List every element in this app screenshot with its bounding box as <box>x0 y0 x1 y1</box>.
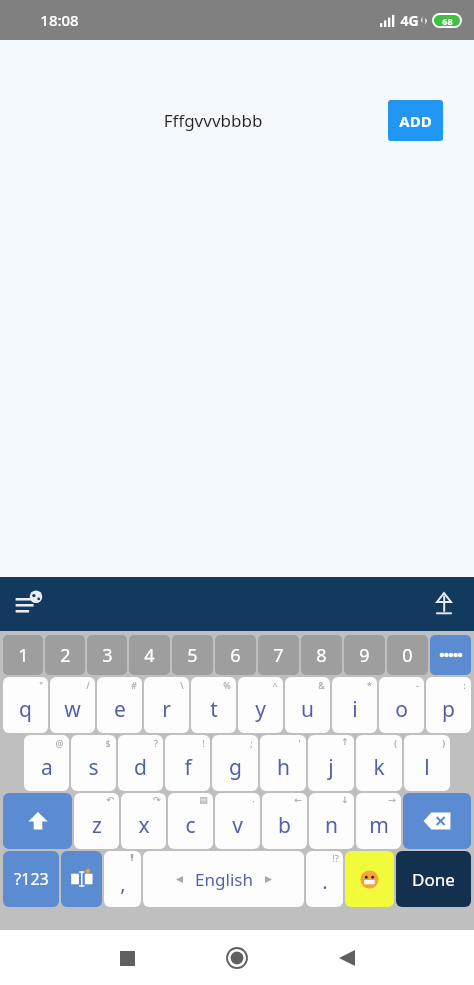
staticText: j <box>328 753 334 782</box>
button[interactable]: 9 <box>344 635 385 675</box>
button[interactable]: Recents <box>72 935 182 981</box>
button[interactable]: ; <box>212 735 258 791</box>
staticText: English <box>195 868 253 891</box>
staticText: ' <box>298 737 301 749</box>
button[interactable]: More <box>430 635 471 675</box>
staticText: 4 <box>144 643 155 668</box>
button[interactable]: ↶ <box>74 793 119 849</box>
button[interactable]: Home <box>182 935 292 981</box>
staticText: ; <box>250 737 253 749</box>
staticText: o <box>395 695 408 724</box>
button[interactable]: Emoji <box>345 851 394 907</box>
staticText: 4G <box>400 11 419 30</box>
button[interactable]: ^ <box>238 677 283 733</box>
staticText: ↷ <box>153 795 161 805</box>
staticText: w <box>64 695 81 724</box>
staticText: & <box>318 679 325 691</box>
staticText: ^ <box>272 679 278 691</box>
button[interactable]: / <box>50 677 95 733</box>
staticText: d <box>134 753 147 782</box>
button[interactable]: 1 <box>3 635 43 675</box>
button[interactable]: $ <box>71 735 116 791</box>
button[interactable]: @ <box>24 735 69 791</box>
staticText: f <box>184 753 192 782</box>
staticText: ↑ <box>341 737 349 747</box>
button[interactable]: → <box>356 793 401 849</box>
staticText: u <box>301 695 314 724</box>
staticText: m <box>369 811 389 840</box>
staticText: $ <box>105 737 111 749</box>
button[interactable]: : <box>426 677 471 733</box>
button[interactable]: Backspace <box>403 793 471 849</box>
button[interactable]: # <box>97 677 142 733</box>
button[interactable]: Expand <box>422 582 466 626</box>
button[interactable]: 5 <box>172 635 213 675</box>
button[interactable]: !? <box>306 851 343 907</box>
button[interactable]: , <box>104 851 141 907</box>
staticText: / <box>86 679 90 691</box>
staticText: ! <box>202 737 205 749</box>
staticText: x <box>138 811 150 840</box>
button[interactable]: ( <box>356 735 402 791</box>
button[interactable]: English <box>143 851 304 907</box>
staticText: : <box>463 679 466 691</box>
staticText: 1 <box>18 643 29 668</box>
staticText: 68 <box>442 15 453 26</box>
button[interactable]: Back <box>292 935 402 981</box>
button[interactable]: 3 <box>87 635 127 675</box>
staticText: \ <box>180 679 184 691</box>
button[interactable]: ? <box>118 735 163 791</box>
button[interactable]: Translate <box>8 582 52 626</box>
staticText: ← <box>294 795 302 805</box>
staticText: , <box>120 870 126 897</box>
button[interactable]: ' <box>260 735 306 791</box>
staticText: ADD <box>399 111 432 131</box>
button[interactable]: ! <box>165 735 210 791</box>
button[interactable]: ADD <box>388 100 443 141</box>
button[interactable]: ↷ <box>121 793 166 849</box>
staticText: 6 <box>230 643 241 668</box>
staticText: ↓ <box>341 795 349 805</box>
button[interactable]: ?123 <box>3 851 59 907</box>
staticText: y <box>255 695 266 724</box>
button[interactable]: ▤ <box>168 793 213 849</box>
staticText: → <box>388 795 396 805</box>
staticText: n <box>325 811 338 840</box>
staticText: k <box>373 753 385 782</box>
button[interactable]: ← <box>262 793 307 849</box>
staticText: - <box>416 679 419 691</box>
button[interactable]: - <box>379 677 424 733</box>
staticText: Done <box>412 868 455 891</box>
staticText: t <box>210 695 218 724</box>
staticText: ↶ <box>106 795 114 805</box>
button[interactable]: % <box>191 677 236 733</box>
staticText: 3 <box>102 643 113 668</box>
staticText: b <box>278 811 291 840</box>
button[interactable]: ) <box>404 735 450 791</box>
button[interactable]: * <box>332 677 377 733</box>
button[interactable]: Keyboard layout <box>61 851 102 907</box>
staticText: r <box>162 695 171 724</box>
staticText: e <box>114 695 126 724</box>
staticText: ) <box>442 737 445 749</box>
button[interactable]: \ <box>144 677 189 733</box>
button[interactable]: 8 <box>301 635 342 675</box>
button[interactable]: ↓ <box>309 793 354 849</box>
staticText: 5 <box>187 643 198 668</box>
button[interactable]: Shift <box>3 793 72 849</box>
button[interactable]: Done <box>396 851 471 907</box>
button[interactable]: & <box>285 677 330 733</box>
staticText: a <box>41 753 53 782</box>
button[interactable]: 2 <box>45 635 85 675</box>
button[interactable]: 0 <box>387 635 428 675</box>
button[interactable]: 7 <box>258 635 299 675</box>
staticText: 7 <box>273 643 284 668</box>
button[interactable]: · <box>215 793 260 849</box>
button[interactable]: " <box>3 677 48 733</box>
button[interactable]: 6 <box>215 635 256 675</box>
staticText: ( <box>394 737 397 749</box>
button[interactable]: ↑ <box>308 735 354 791</box>
staticText: @ <box>55 737 64 749</box>
staticText: c <box>185 811 196 840</box>
button[interactable]: 4 <box>129 635 170 675</box>
